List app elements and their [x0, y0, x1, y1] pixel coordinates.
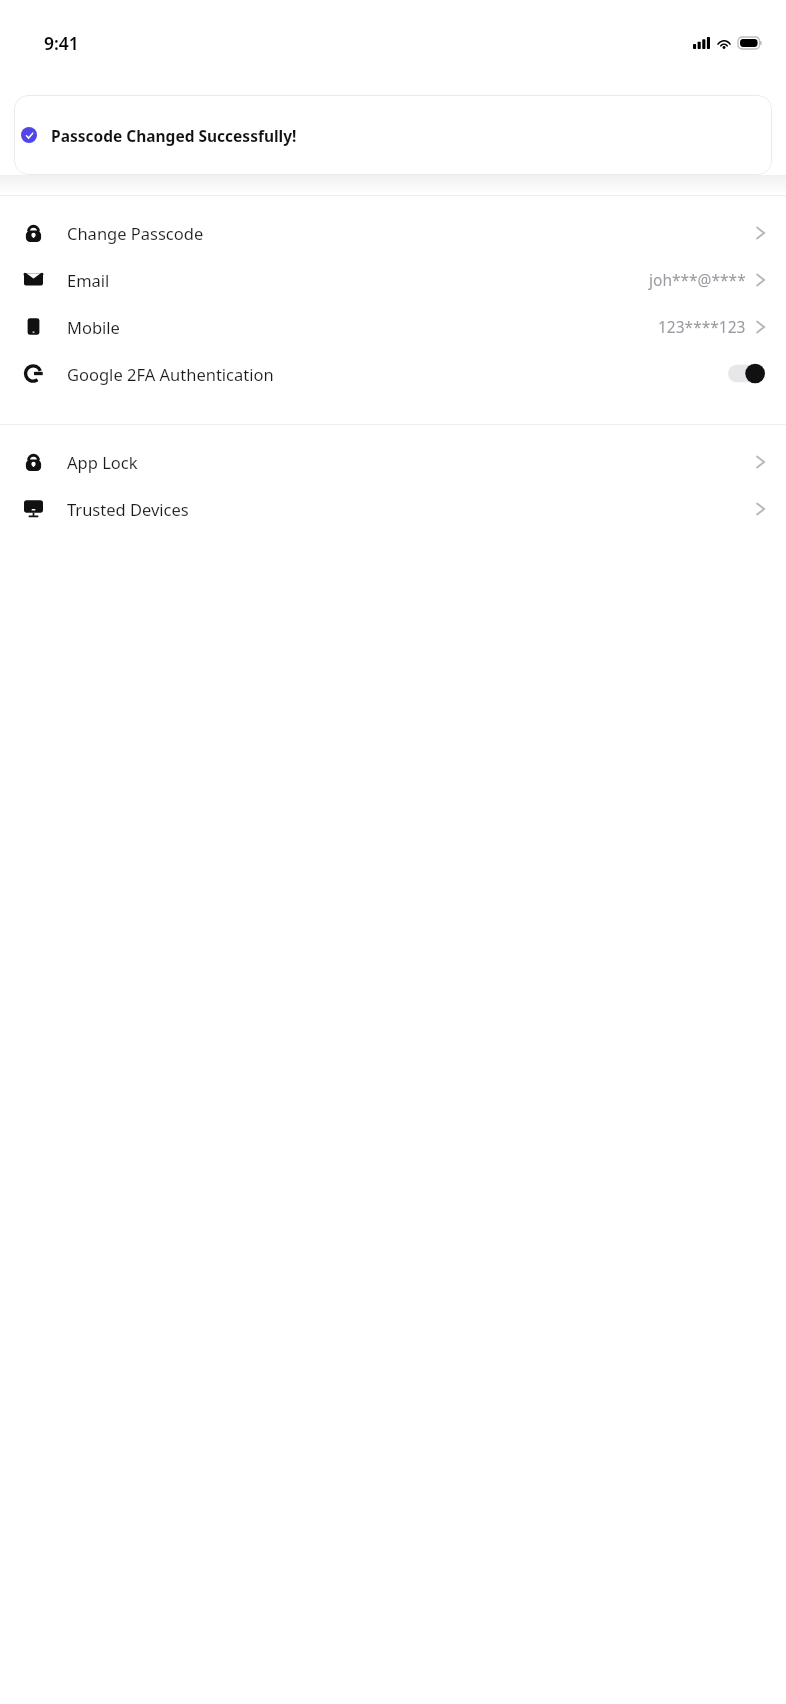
- staticText: joh***@****: [649, 269, 746, 290]
- staticText: Passcode Changed Successfully!: [51, 125, 297, 146]
- staticText: Email: [67, 269, 110, 291]
- button[interactable]: Passcode Changed Successfully!: [14, 95, 772, 175]
- staticText: Trusted Devices: [67, 498, 189, 520]
- staticText: App Lock: [67, 451, 138, 473]
- staticText: Google 2FA Authentication: [67, 363, 274, 385]
- button[interactable]: Trusted Devices: [0, 485, 786, 532]
- staticText: Mobile: [67, 316, 120, 338]
- staticText: 9:41: [44, 31, 79, 55]
- button[interactable]: Change Passcode: [0, 209, 786, 256]
- button[interactable]: Google 2FA Authentication: [0, 350, 786, 397]
- button[interactable]: App Lock: [0, 438, 786, 485]
- button[interactable]: Mobile: [0, 303, 786, 350]
- button[interactable]: Google 2FA Authentication toggle: [728, 363, 765, 384]
- staticText: 123****123: [658, 316, 746, 337]
- button[interactable]: Email: [0, 256, 786, 303]
- staticText: Change Passcode: [67, 222, 204, 244]
